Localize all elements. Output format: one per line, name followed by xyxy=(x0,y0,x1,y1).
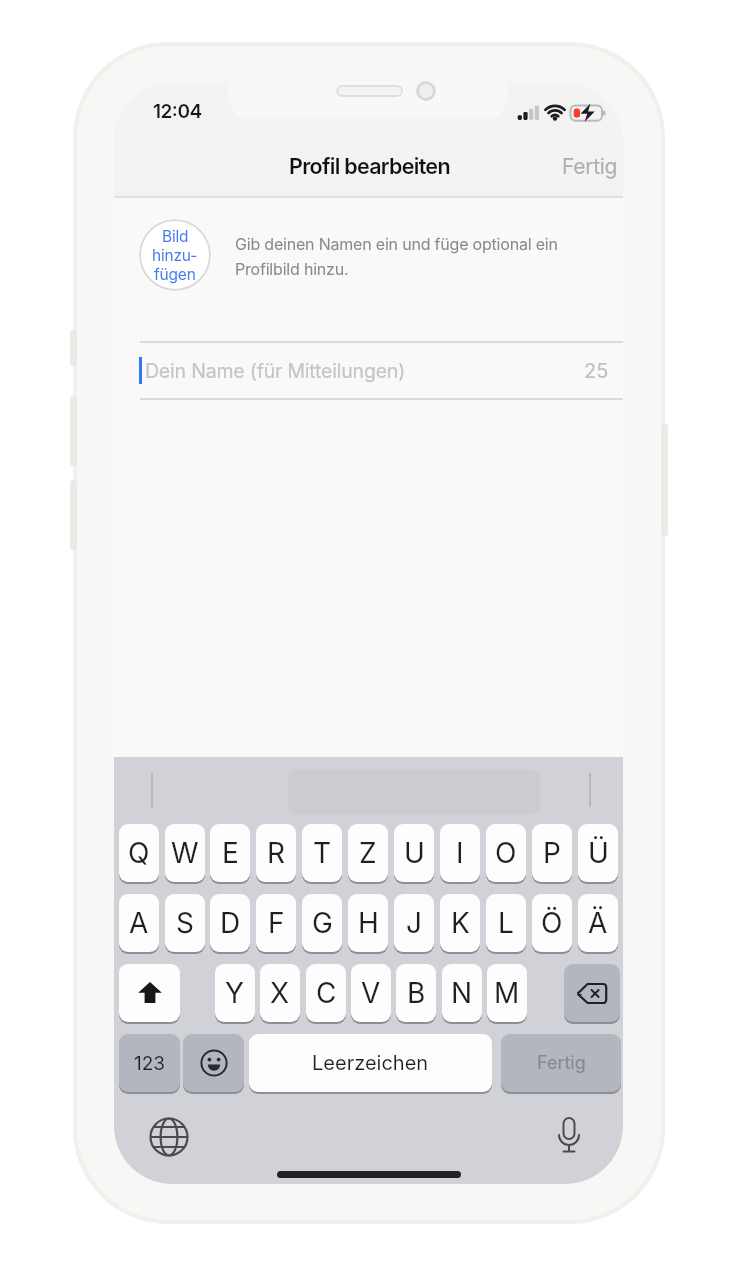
button[interactable]: U xyxy=(394,824,434,882)
button[interactable]: Ü xyxy=(578,824,618,882)
staticText: T xyxy=(313,836,332,870)
button[interactable]: L xyxy=(486,894,526,952)
button[interactable]: Ä xyxy=(578,894,618,952)
button[interactable]: G xyxy=(302,894,342,952)
button[interactable]: Fertig xyxy=(518,150,618,182)
button[interactable]: P xyxy=(532,824,572,882)
staticText: C xyxy=(316,976,337,1010)
staticText: Z xyxy=(359,836,377,870)
staticText: A xyxy=(129,906,149,940)
button[interactable]: W xyxy=(165,824,205,882)
button[interactable]: C xyxy=(306,964,346,1022)
staticText: K xyxy=(451,906,470,940)
button[interactable] xyxy=(554,1117,584,1157)
staticText: hinzu- xyxy=(152,246,198,265)
staticText: P xyxy=(543,836,561,870)
staticText: Q xyxy=(128,836,150,870)
button[interactable] xyxy=(148,1116,190,1158)
staticText: L xyxy=(498,906,514,940)
button[interactable] xyxy=(564,964,620,1022)
staticText: V xyxy=(361,976,381,1010)
staticText: 123 xyxy=(134,1052,166,1075)
staticText: Ä xyxy=(588,906,608,940)
button[interactable]: D xyxy=(210,894,250,952)
staticText: E xyxy=(222,836,239,870)
button[interactable]: Ö xyxy=(532,894,572,952)
staticText: R xyxy=(267,836,286,870)
staticText: Leerzeichen xyxy=(312,1051,429,1075)
button[interactable]: J xyxy=(394,894,434,952)
button[interactable]: V xyxy=(351,964,391,1022)
button[interactable]: S xyxy=(165,894,205,952)
button[interactable]: Z xyxy=(348,824,388,882)
button[interactable] xyxy=(183,1034,244,1092)
staticText: H xyxy=(358,906,379,940)
staticText: J xyxy=(406,906,422,940)
button[interactable]: K xyxy=(440,894,480,952)
staticText: M xyxy=(494,976,520,1010)
staticText: Dein Name (für Mitteilungen) xyxy=(145,359,406,383)
button[interactable]: E xyxy=(210,824,250,882)
staticText: Fertig xyxy=(537,1052,586,1074)
button[interactable]: I xyxy=(440,824,480,882)
button[interactable]: T xyxy=(302,824,342,882)
staticText: Bild xyxy=(162,227,189,246)
button[interactable] xyxy=(119,964,180,1022)
button[interactable]: F xyxy=(256,894,296,952)
staticText: B xyxy=(407,976,426,1010)
staticText: Profil bearbeiten xyxy=(289,153,450,179)
staticText: I xyxy=(456,836,464,870)
button[interactable] xyxy=(140,342,623,398)
button[interactable]: Q xyxy=(119,824,159,882)
button[interactable]: M xyxy=(487,964,527,1022)
button[interactable]: Y xyxy=(215,964,255,1022)
button[interactable]: X xyxy=(260,964,300,1022)
staticText: 25 xyxy=(584,359,609,383)
staticText: Ü xyxy=(588,836,609,870)
button[interactable]: Bild xyxy=(139,219,211,291)
staticText: Fertig xyxy=(562,154,618,179)
staticText: G xyxy=(312,906,333,940)
staticText: Gib deinen Namen ein und füge optional e… xyxy=(235,234,558,279)
staticText: X xyxy=(270,976,290,1010)
staticText: S xyxy=(176,906,194,940)
button[interactable]: B xyxy=(396,964,436,1022)
staticText: Ö xyxy=(541,906,563,940)
button[interactable]: 123 xyxy=(119,1034,180,1092)
staticText: O xyxy=(495,836,517,870)
staticText: fügen xyxy=(154,265,196,284)
staticText: 12:04 xyxy=(153,100,202,123)
staticText: U xyxy=(404,836,425,870)
staticText: D xyxy=(220,906,241,940)
button[interactable]: Leerzeichen xyxy=(249,1034,492,1092)
button[interactable]: N xyxy=(442,964,482,1022)
button[interactable]: Fertig xyxy=(501,1034,621,1092)
staticText: F xyxy=(268,906,285,940)
button[interactable]: H xyxy=(348,894,388,952)
staticText: W xyxy=(171,836,199,870)
button[interactable]: A xyxy=(119,894,159,952)
staticText: N xyxy=(451,976,473,1010)
staticText: Y xyxy=(225,976,245,1010)
button[interactable]: R xyxy=(256,824,296,882)
button[interactable]: O xyxy=(486,824,526,882)
